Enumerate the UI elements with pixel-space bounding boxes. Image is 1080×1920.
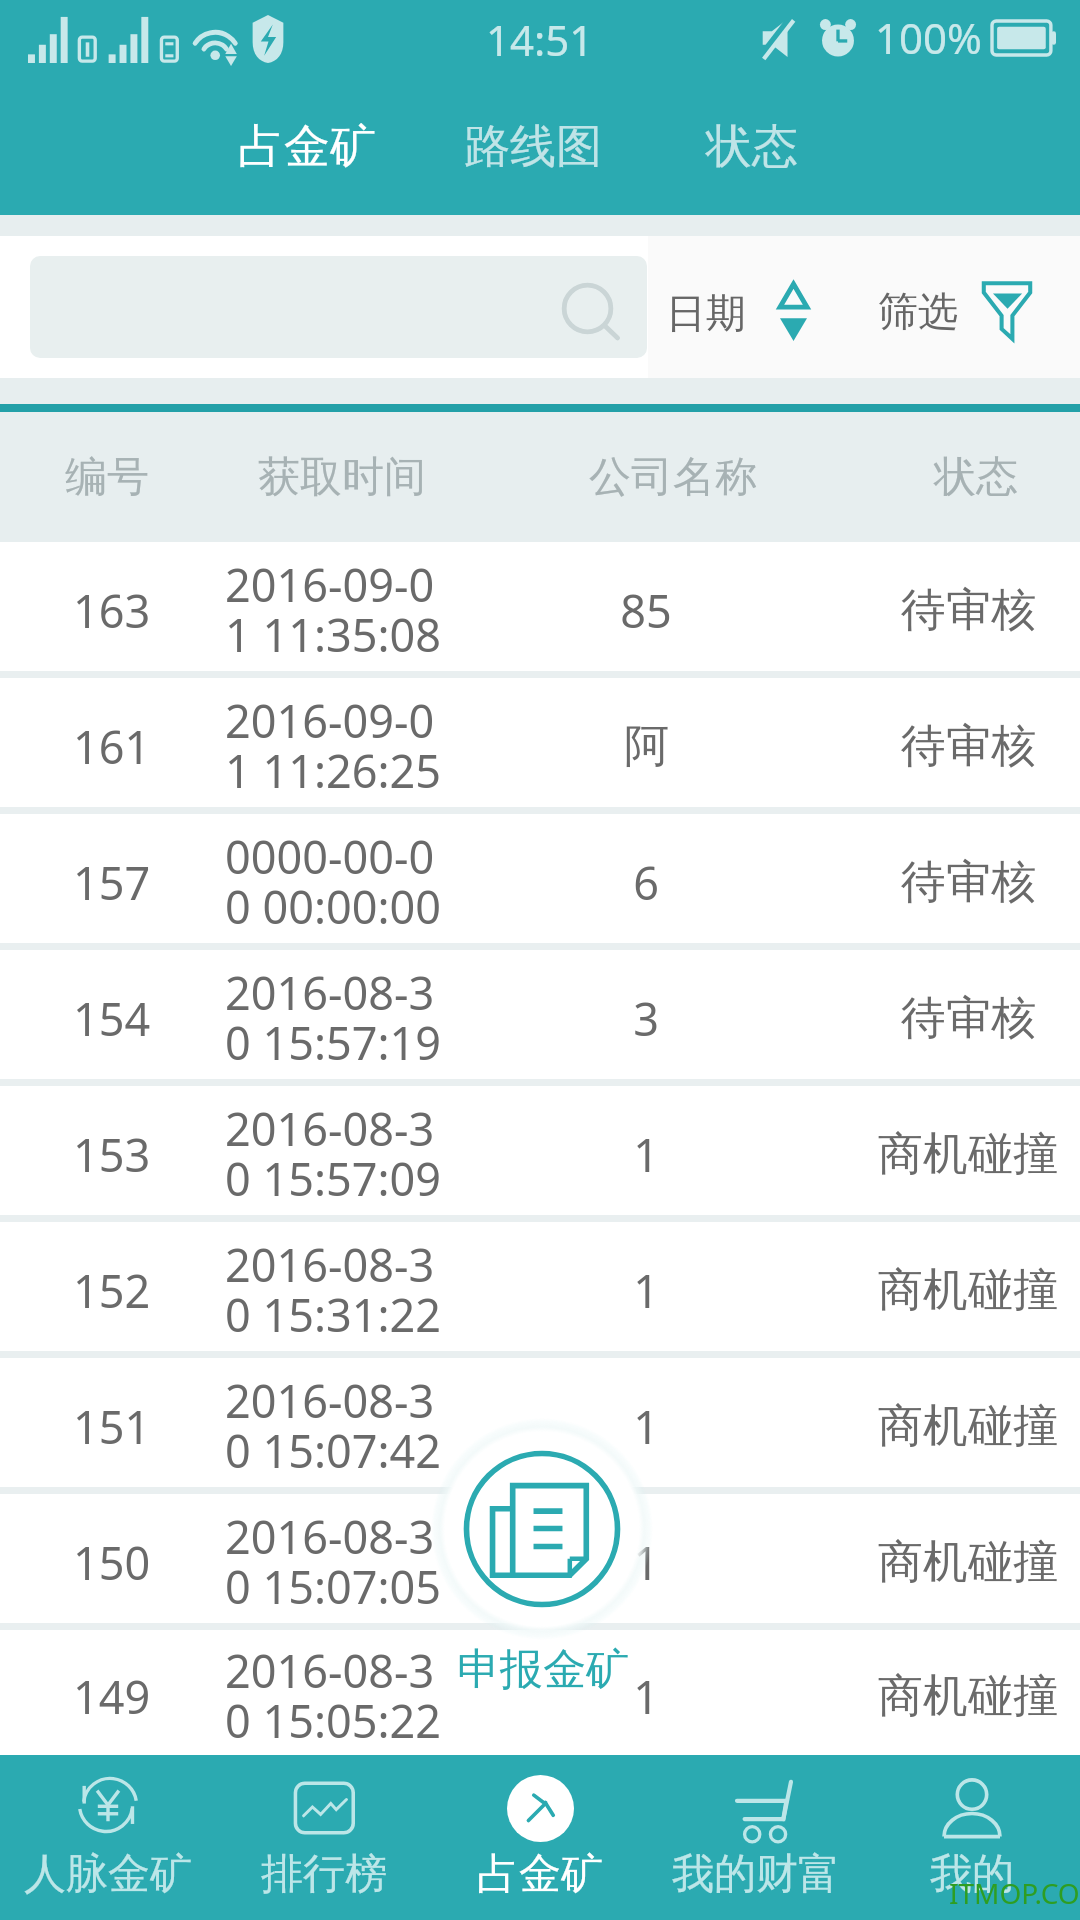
- staticText: 占金矿: [477, 1848, 603, 1901]
- staticText: 163: [73, 580, 151, 641]
- staticText: 状态: [934, 451, 1018, 504]
- staticText: 1: [633, 1666, 659, 1727]
- button[interactable]: 我的财富: [648, 1755, 864, 1920]
- button[interactable]: 149: [0, 1630, 1080, 1755]
- staticText: 商机碰撞: [878, 1534, 1058, 1591]
- staticText: 待审核: [901, 718, 1036, 775]
- staticText: 1: [633, 1396, 659, 1457]
- staticText: 161: [73, 716, 151, 777]
- staticText: 待审核: [901, 854, 1036, 911]
- staticText: 编号: [65, 451, 149, 504]
- button[interactable]: 申报金矿: [445, 1432, 639, 1626]
- button[interactable]: 153: [0, 1086, 1080, 1215]
- staticText: 商机碰撞: [878, 1262, 1058, 1319]
- staticText: 153: [73, 1124, 151, 1185]
- staticText: 商机碰撞: [878, 1668, 1058, 1725]
- staticText: 人脉金矿: [24, 1848, 192, 1901]
- staticText: 0000-00-0 0 00:00:00: [225, 826, 442, 937]
- staticText: 157: [73, 852, 151, 913]
- staticText: 我的: [930, 1848, 1014, 1901]
- staticText: 我的财富: [672, 1848, 840, 1901]
- button[interactable]: 161: [0, 678, 1080, 807]
- staticText: 2016-08-3 0 15:07:05: [225, 1506, 442, 1617]
- staticText: 149: [73, 1666, 151, 1727]
- staticText: 2016-08-3 0 15:57:19: [225, 962, 442, 1073]
- staticText: 150: [73, 1532, 151, 1593]
- staticText: 商机碰撞: [878, 1398, 1058, 1455]
- staticText: ITMOP.COM: [949, 1874, 1080, 1912]
- button[interactable]: 人脉金矿: [0, 1755, 216, 1920]
- staticText: 14:51: [486, 11, 594, 68]
- button[interactable]: 163: [0, 542, 1080, 671]
- button[interactable]: 154: [0, 950, 1080, 1079]
- button[interactable]: 152: [0, 1222, 1080, 1351]
- button[interactable]: 157: [0, 814, 1080, 943]
- staticText: 2016-09-0 1 11:35:08: [225, 554, 442, 665]
- button[interactable]: 排行榜: [216, 1755, 432, 1920]
- staticText: 筛选: [878, 286, 958, 336]
- button[interactable]: 151: [0, 1358, 1080, 1487]
- staticText: 待审核: [901, 582, 1036, 639]
- staticText: 2016-08-3 0 15:57:09: [225, 1098, 442, 1209]
- staticText: 151: [73, 1396, 151, 1457]
- button[interactable]: 筛选: [878, 282, 1034, 340]
- staticText: 公司名称: [589, 451, 757, 504]
- button[interactable]: 日期: [666, 284, 807, 341]
- staticText: 待审核: [901, 990, 1036, 1047]
- staticText: 阿: [624, 718, 669, 775]
- staticText: 1: [633, 1124, 659, 1185]
- staticText: 日期: [666, 288, 746, 338]
- staticText: 154: [73, 988, 151, 1049]
- staticText: 1: [633, 1260, 659, 1321]
- other: Search: [560, 281, 624, 345]
- staticText: 1: [633, 1532, 659, 1593]
- staticText: 2016-08-3 0 15:07:42: [225, 1370, 442, 1481]
- button[interactable]: 状态: [706, 118, 798, 176]
- staticText: 2016-08-3 0 15:31:22: [225, 1234, 442, 1345]
- staticText: 3: [633, 988, 659, 1049]
- staticText: 100%: [875, 9, 982, 66]
- staticText: 申报金矿: [457, 1643, 629, 1697]
- staticText: 6: [633, 852, 659, 913]
- staticText: 商机碰撞: [878, 1126, 1058, 1183]
- button[interactable]: 占金矿: [238, 118, 376, 176]
- staticText: 排行榜: [261, 1848, 387, 1901]
- staticText: 2016-08-3 0 15:05:22: [225, 1640, 442, 1751]
- staticText: 85: [620, 580, 672, 641]
- button[interactable]: 占金矿: [432, 1755, 648, 1920]
- button[interactable]: 我的: [864, 1755, 1080, 1920]
- button[interactable]: 路线图: [464, 118, 602, 176]
- button[interactable]: Search: [30, 256, 647, 358]
- staticText: 2016-09-0 1 11:26:25: [225, 690, 442, 801]
- staticText: 152: [73, 1260, 151, 1321]
- staticText: 获取时间: [258, 451, 426, 504]
- button[interactable]: 150: [0, 1494, 1080, 1623]
